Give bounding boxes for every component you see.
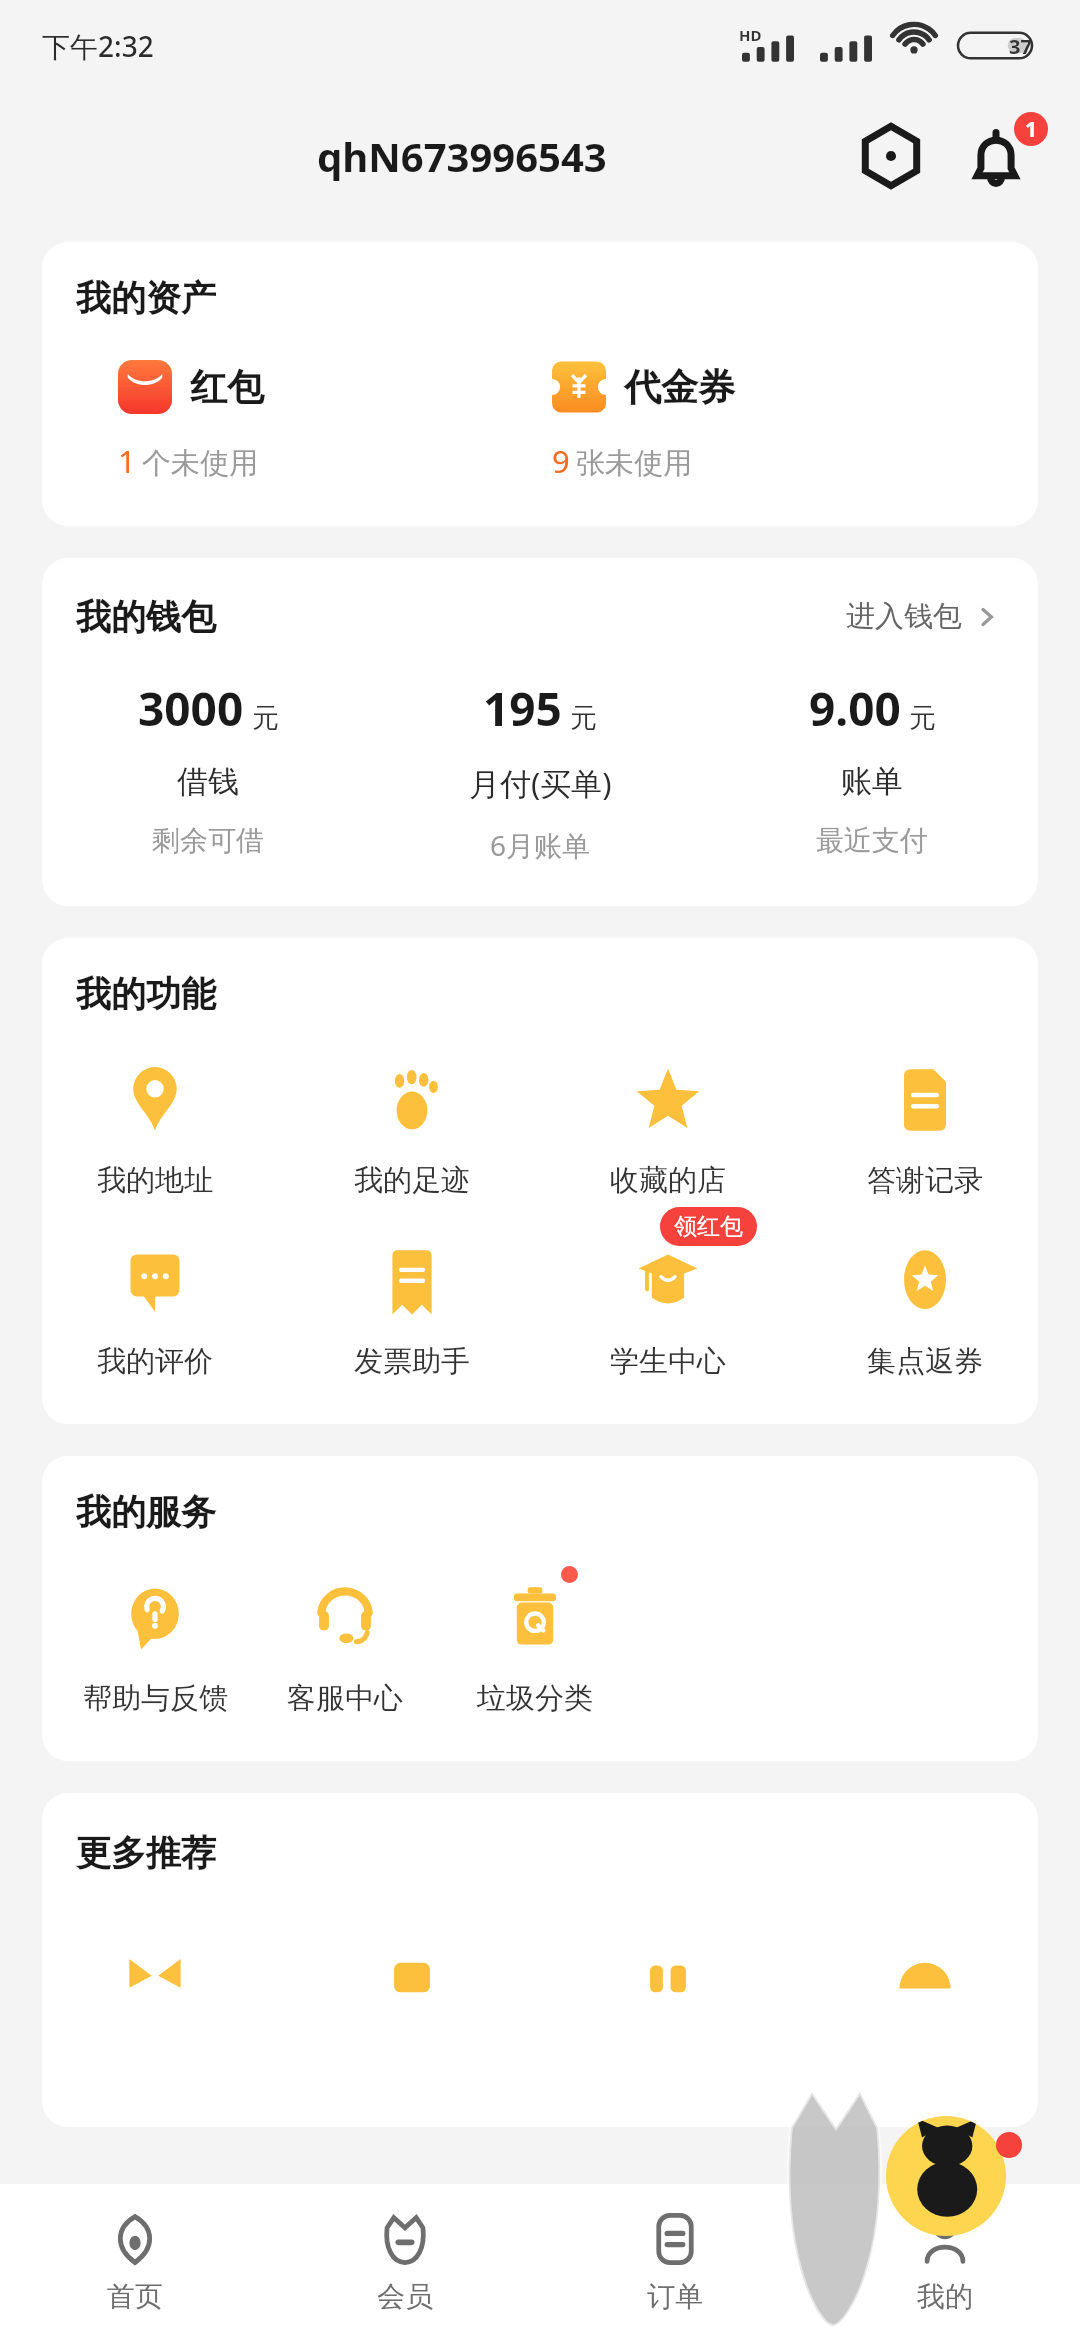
button[interactable]: 红包 [42, 360, 540, 482]
button[interactable]: Settings [848, 113, 934, 199]
staticText: 元 [909, 701, 936, 735]
staticText: HD [739, 25, 762, 45]
button[interactable]: 垃圾分类 [440, 1564, 630, 1723]
staticText: 账单 [841, 762, 903, 801]
staticText: 剩余可借 [152, 823, 264, 858]
button[interactable]: 集点返券 [830, 1227, 1020, 1386]
staticText: 更多推荐 [76, 1831, 216, 1875]
staticText: 1 [118, 440, 136, 482]
staticText: 我的资产 [76, 276, 216, 320]
button[interactable]: 3000 [42, 677, 374, 858]
staticText: 进入钱包 [846, 598, 962, 635]
button[interactable]: 我的地址 [60, 1046, 250, 1205]
staticText: 我的评价 [97, 1343, 213, 1380]
staticText: 195 [483, 677, 562, 740]
staticText: 3000 [138, 677, 244, 740]
staticText: 最近支付 [816, 823, 928, 858]
staticText: 个未使用 [142, 445, 258, 482]
button[interactable]: 进入钱包 [840, 592, 1004, 641]
staticText: 领红包 [674, 1212, 743, 1241]
staticText: 张未使用 [576, 445, 692, 482]
staticText: 1 [1025, 115, 1038, 144]
staticText: 会员 [377, 2279, 433, 2314]
staticText: 我的服务 [76, 1490, 216, 1534]
staticText: 9.00 [809, 677, 901, 740]
staticText: 37 [1009, 33, 1032, 60]
staticText: 代金券 [624, 364, 735, 411]
staticText: 我的功能 [76, 972, 216, 1016]
button[interactable]: 订单 [540, 2184, 810, 2340]
button[interactable]: 帮助与反馈 [60, 1564, 250, 1723]
staticText: 集点返券 [867, 1343, 983, 1380]
staticText: 月付(买单) [469, 762, 612, 804]
staticText: 我的足迹 [354, 1162, 470, 1199]
button[interactable]: 我的评价 [60, 1227, 250, 1386]
staticText: 我的钱包 [76, 595, 216, 639]
button[interactable]: 收藏的店 [573, 1046, 763, 1205]
staticText: 我的 [917, 2279, 973, 2314]
button[interactable]: Notifications [954, 110, 1046, 202]
button[interactable]: 代金券 [540, 360, 1038, 482]
staticText: 下午2:32 [42, 27, 154, 65]
staticText: 红包 [190, 364, 264, 411]
staticText: qhN673996543 [317, 129, 607, 183]
staticText: 元 [570, 701, 597, 735]
button[interactable]: 领红包 [573, 1227, 763, 1386]
staticText: 客服中心 [287, 1680, 403, 1717]
staticText: 我的地址 [97, 1162, 213, 1199]
staticText: 元 [252, 701, 279, 735]
button[interactable]: 9.00 [706, 677, 1038, 858]
button[interactable]: 客服中心 [250, 1564, 440, 1723]
button[interactable]: 首页 [0, 2184, 270, 2340]
button[interactable]: 会员 [270, 2184, 540, 2340]
staticText: 垃圾分类 [477, 1680, 593, 1717]
staticText: 帮助与反馈 [83, 1680, 228, 1717]
staticText: 收藏的店 [610, 1162, 726, 1199]
staticText: 6月账单 [490, 826, 591, 864]
button[interactable]: 我的足迹 [317, 1046, 507, 1205]
staticText: 订单 [647, 2279, 703, 2314]
staticText: 首页 [107, 2279, 163, 2314]
button[interactable]: 发票助手 [317, 1227, 507, 1386]
staticText: 答谢记录 [867, 1162, 983, 1199]
button[interactable]: 195 [374, 677, 706, 864]
staticText: 发票助手 [354, 1343, 470, 1380]
staticText: 9 [552, 440, 570, 482]
staticText: 借钱 [177, 762, 239, 801]
staticText: 学生中心 [610, 1343, 726, 1380]
button[interactable]: 答谢记录 [830, 1046, 1020, 1205]
button[interactable]: 我的 [810, 2184, 1080, 2340]
